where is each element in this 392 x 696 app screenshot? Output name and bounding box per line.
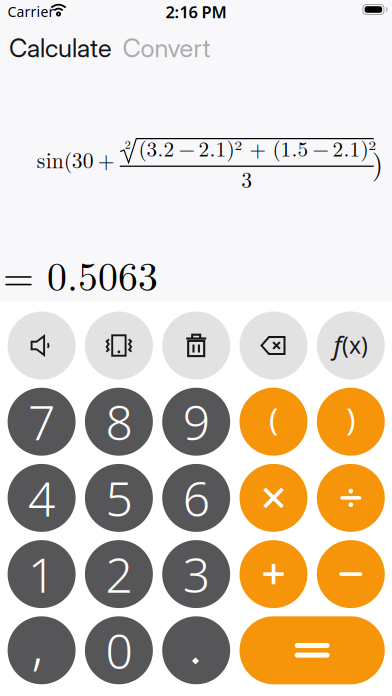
button[interactable]: ,: [8, 616, 76, 684]
button[interactable]: Functions: [317, 311, 385, 379]
staticText: 9: [183, 390, 210, 453]
staticText: Convert: [122, 33, 210, 63]
button[interactable]: Clear: [162, 311, 230, 379]
button[interactable]: 8: [85, 388, 153, 456]
button[interactable]: Divide: [317, 464, 385, 532]
button[interactable]: 3: [162, 540, 230, 608]
staticText: 7: [28, 390, 55, 453]
button[interactable]: 6: [162, 464, 230, 532]
button[interactable]: Convert: [122, 33, 210, 63]
staticText: 3: [183, 542, 210, 606]
button[interactable]: 5: [85, 464, 153, 532]
staticText: 8: [105, 390, 132, 453]
staticText: 4: [28, 466, 55, 530]
button[interactable]: Delete: [239, 311, 307, 379]
button[interactable]: Sound: [8, 311, 76, 379]
staticText: 6: [183, 466, 210, 530]
button[interactable]: ): [317, 388, 385, 456]
staticText: 5: [105, 466, 132, 530]
button[interactable]: 2: [85, 540, 153, 608]
button[interactable]: (: [239, 388, 307, 456]
staticText: ): [346, 398, 355, 439]
button[interactable]: 7: [8, 388, 76, 456]
staticText: = 0.5063: [3, 246, 158, 302]
staticText: ,: [31, 608, 43, 679]
button[interactable]: 9: [162, 388, 230, 456]
staticText: (3.2 − 2.1)² + (1.5 − 2.1)²: [138, 132, 376, 162]
button[interactable]: Multiply: [239, 464, 307, 532]
button[interactable]: 4: [8, 464, 76, 532]
staticText: 2:16 PM: [165, 1, 226, 23]
staticText: Calculate: [9, 33, 112, 63]
staticText: (x): [342, 330, 368, 360]
button[interactable]: Equals: [239, 616, 385, 684]
button[interactable]: 1: [8, 540, 76, 608]
staticText: 1: [28, 542, 55, 606]
staticText: ): [372, 142, 383, 183]
button[interactable]: 0: [85, 616, 153, 684]
staticText: 2: [125, 135, 131, 152]
button[interactable]: Minus: [317, 540, 385, 608]
staticText: f: [334, 328, 342, 362]
button[interactable]: Vibration: [85, 311, 153, 379]
staticText: 3: [241, 163, 252, 194]
button[interactable]: Plus: [239, 540, 307, 608]
staticText: sin(30 +: [37, 144, 115, 174]
staticText: 0: [105, 618, 132, 682]
button[interactable]: Calculate: [9, 33, 112, 63]
staticText: 2: [105, 542, 132, 606]
button[interactable]: Decimal point: [162, 616, 230, 684]
staticText: Carrier: [7, 2, 54, 21]
staticText: (: [269, 398, 278, 439]
